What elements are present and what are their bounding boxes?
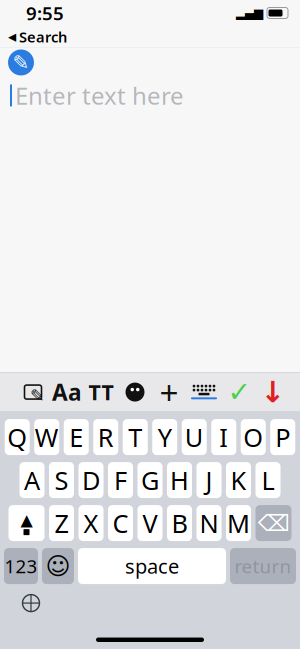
- staticText: K: [230, 463, 246, 497]
- button[interactable]: O: [241, 419, 266, 455]
- button[interactable]: X: [78, 505, 103, 541]
- staticText: M: [227, 506, 250, 540]
- staticText: ↓: [260, 375, 285, 409]
- staticText: ▂▄▆: [236, 6, 263, 20]
- staticText: 9:55: [26, 1, 64, 25]
- staticText: Search: [19, 27, 67, 46]
- staticText: U: [185, 420, 204, 454]
- staticText: Z: [54, 506, 68, 540]
- button[interactable]: F: [108, 462, 133, 498]
- button[interactable]: Insert: [152, 375, 186, 409]
- button[interactable]: Emoji: [42, 548, 74, 584]
- button[interactable]: Done: [222, 375, 256, 409]
- staticText: D: [82, 463, 100, 497]
- button[interactable]: Hide keyboard: [256, 375, 290, 409]
- staticText: return: [234, 554, 291, 578]
- button[interactable]: A: [19, 462, 44, 498]
- button[interactable]: S: [49, 462, 74, 498]
- button[interactable]: P: [270, 419, 295, 455]
- button[interactable]: N: [196, 505, 221, 541]
- staticText: +: [159, 370, 178, 414]
- button[interactable]: H: [167, 462, 192, 498]
- button[interactable]: Z: [49, 505, 74, 541]
- button[interactable]: G: [137, 462, 162, 498]
- staticText: F: [114, 463, 127, 497]
- button[interactable]: Y: [152, 419, 177, 455]
- staticText: L: [261, 463, 274, 497]
- button[interactable]: Colors: [118, 375, 152, 409]
- button[interactable]: W: [34, 419, 59, 455]
- staticText: T: [128, 420, 142, 454]
- button[interactable]: Shift: [8, 505, 44, 541]
- button[interactable]: E: [64, 419, 89, 455]
- button[interactable]: I: [211, 419, 236, 455]
- button[interactable]: Letter case: [50, 375, 84, 409]
- button[interactable]: Drawing: [0, 47, 34, 75]
- staticText: ✓: [227, 376, 250, 408]
- button[interactable]: K: [226, 462, 251, 498]
- button[interactable]: return: [230, 548, 296, 584]
- button[interactable]: U: [182, 419, 207, 455]
- staticText: 123: [4, 554, 37, 578]
- staticText: space: [125, 553, 179, 579]
- staticText: ▲: [20, 511, 32, 529]
- staticText: N: [199, 506, 218, 540]
- staticText: V: [142, 506, 157, 540]
- staticText: ⌫: [257, 510, 289, 536]
- staticText: I: [219, 420, 228, 454]
- staticText: B: [171, 506, 187, 540]
- button[interactable]: Draw: [16, 375, 50, 409]
- button[interactable]: space: [78, 548, 226, 584]
- staticText: W: [35, 420, 59, 454]
- button[interactable]: J: [196, 462, 221, 498]
- staticText: S: [54, 463, 68, 497]
- staticText: Enter text here: [15, 79, 184, 111]
- button[interactable]: Text size: [84, 375, 118, 409]
- staticText: J: [205, 463, 212, 497]
- staticText: O: [243, 420, 263, 454]
- button[interactable]: Next keyboard: [0, 590, 46, 616]
- staticText: ◀: [8, 31, 16, 43]
- staticText: ☺: [45, 552, 70, 580]
- button[interactable]: M: [226, 505, 251, 541]
- staticText: H: [170, 463, 189, 497]
- staticText: E: [69, 420, 83, 454]
- staticText: ✎: [30, 386, 45, 405]
- button[interactable]: L: [255, 462, 280, 498]
- staticText: R: [98, 420, 114, 454]
- button[interactable]: D: [78, 462, 103, 498]
- staticText: Y: [158, 420, 172, 454]
- button[interactable]: Q: [5, 419, 30, 455]
- staticText: TT: [88, 378, 113, 406]
- button[interactable]: 123: [4, 548, 38, 584]
- button[interactable]: B: [167, 505, 192, 541]
- button[interactable]: R: [93, 419, 118, 455]
- staticText: C: [112, 506, 128, 540]
- button[interactable]: C: [108, 505, 133, 541]
- button[interactable]: T: [123, 419, 148, 455]
- staticText: P: [275, 420, 290, 454]
- button[interactable]: Keyboard: [186, 375, 222, 409]
- button[interactable]: ◀: [0, 26, 67, 47]
- staticText: X: [83, 506, 98, 540]
- button[interactable]: V: [137, 505, 162, 541]
- button[interactable]: Delete: [255, 505, 291, 541]
- staticText: ✎: [12, 51, 29, 74]
- staticText: Aa: [52, 377, 82, 407]
- staticText: A: [24, 463, 40, 497]
- staticText: G: [141, 463, 159, 497]
- staticText: Q: [7, 420, 27, 454]
